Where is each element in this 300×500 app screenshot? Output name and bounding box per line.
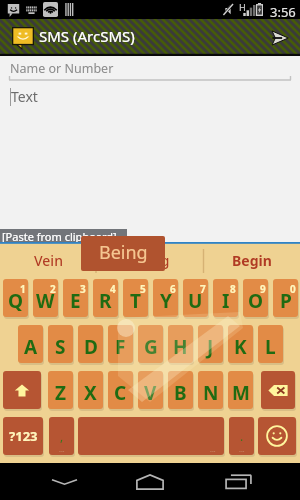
button[interactable]: Y	[153, 279, 178, 317]
button[interactable]: Symbols	[3, 417, 43, 455]
staticText: ...	[59, 445, 65, 455]
staticText: B	[174, 380, 187, 406]
button[interactable]: D	[78, 325, 103, 363]
button[interactable]: Vein	[0, 244, 96, 277]
staticText: X	[84, 380, 97, 406]
staticText: O	[248, 288, 264, 314]
button[interactable]: Back	[22, 463, 106, 500]
staticText: K	[234, 334, 247, 360]
staticText: N	[203, 380, 219, 406]
staticText: H	[173, 334, 188, 360]
button[interactable]: N	[198, 371, 223, 409]
button[interactable]: Send	[264, 21, 296, 55]
staticText: ,	[60, 428, 64, 444]
staticText: M	[232, 380, 250, 406]
staticText: 2	[50, 282, 56, 296]
button[interactable]: B	[168, 371, 193, 409]
button[interactable]: Period	[229, 417, 254, 455]
button[interactable]: A	[18, 325, 43, 363]
staticText: P	[280, 288, 292, 314]
staticText: 1	[20, 282, 26, 296]
staticText: Q	[8, 288, 24, 314]
button[interactable]: V	[138, 371, 163, 409]
staticText: .	[240, 428, 244, 444]
button[interactable]: Q	[3, 279, 28, 317]
button[interactable]: H	[168, 325, 193, 363]
staticText: L	[265, 334, 276, 360]
button[interactable]: W	[33, 279, 58, 317]
staticText: G	[144, 334, 158, 360]
staticText: 7	[200, 282, 206, 296]
button[interactable]: Being	[96, 244, 204, 277]
staticText: 3:56	[270, 3, 296, 21]
staticText: 4	[110, 282, 116, 296]
staticText: J	[207, 334, 214, 360]
staticText: F	[115, 334, 126, 360]
staticText: A	[24, 334, 38, 360]
staticText: W	[36, 288, 55, 314]
staticText: Text	[11, 87, 38, 106]
staticText: 5	[140, 282, 146, 296]
button[interactable]: Emoji	[258, 417, 296, 455]
staticText: 0	[290, 282, 296, 296]
button[interactable]: Z	[48, 371, 73, 409]
button[interactable]: [Paste from clipboard]	[0, 229, 127, 244]
button[interactable]: X	[78, 371, 103, 409]
staticText: R	[99, 288, 112, 314]
button[interactable]: G	[138, 325, 163, 363]
staticText: V	[144, 380, 157, 406]
button[interactable]: I	[213, 279, 238, 317]
staticText: U	[188, 288, 203, 314]
button[interactable]: Backspace	[261, 371, 295, 409]
staticText: I	[222, 288, 230, 314]
staticText: Name or Number	[10, 60, 114, 77]
staticText: Z	[55, 380, 67, 406]
staticText: 8	[230, 282, 236, 296]
button[interactable]: T	[123, 279, 148, 317]
button[interactable]: Comma	[49, 417, 74, 455]
staticText: ...	[210, 445, 216, 455]
staticText: 6	[170, 282, 176, 296]
button[interactable]: U	[183, 279, 208, 317]
staticText: S	[55, 334, 66, 360]
staticText: Vein	[34, 251, 63, 270]
button[interactable]: R	[93, 279, 118, 317]
staticText: 9	[260, 282, 266, 296]
button[interactable]: Begin	[204, 244, 300, 277]
staticText: [Paste from clipboard]	[2, 229, 117, 244]
staticText: SMS (ArcSMS)	[39, 26, 135, 46]
button[interactable]: Space	[78, 417, 224, 455]
staticText: C	[114, 380, 127, 406]
button[interactable]: J	[198, 325, 223, 363]
button[interactable]: L	[258, 325, 283, 363]
staticText: Being	[131, 251, 170, 270]
staticText: D	[84, 334, 98, 360]
button[interactable]: Shift	[3, 371, 41, 409]
button[interactable]: P	[273, 279, 298, 317]
staticText: Y	[160, 288, 172, 314]
staticText: H	[239, 1, 246, 13]
button[interactable]: Home	[108, 463, 192, 500]
button[interactable]: F	[108, 325, 133, 363]
staticText: 3	[80, 282, 86, 296]
button[interactable]: E	[63, 279, 88, 317]
staticText: Begin	[232, 251, 272, 270]
staticText: Being	[99, 240, 148, 265]
staticText: T	[130, 288, 141, 314]
button[interactable]: C	[108, 371, 133, 409]
button[interactable]: O	[243, 279, 268, 317]
staticText: ?123	[9, 427, 38, 445]
button[interactable]: K	[228, 325, 253, 363]
button[interactable]: S	[48, 325, 73, 363]
button[interactable]: M	[228, 371, 253, 409]
button[interactable]: Recents	[196, 463, 280, 500]
staticText: ...	[239, 445, 245, 455]
staticText: E	[70, 288, 81, 314]
